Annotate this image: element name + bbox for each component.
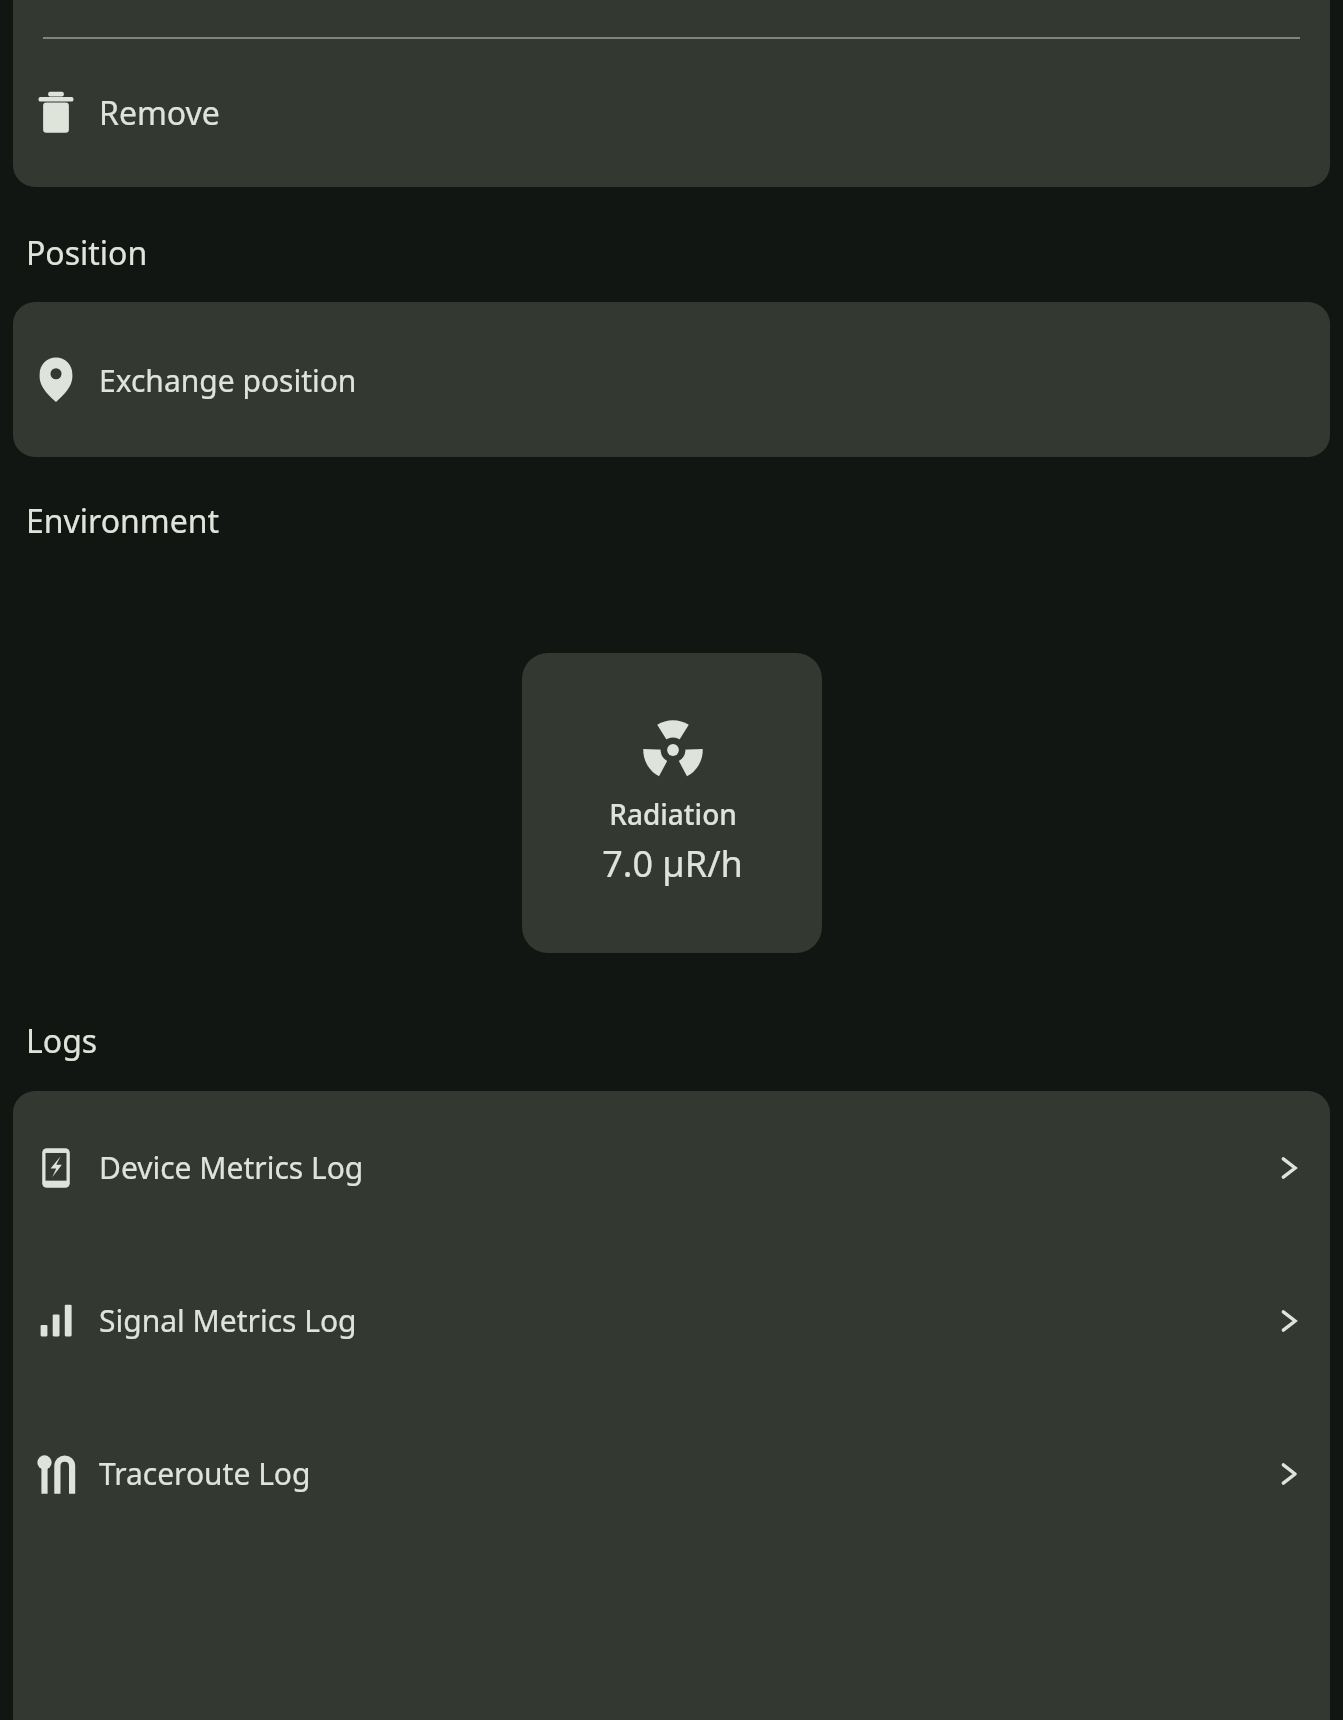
button[interactable]: Remove bbox=[13, 38, 1330, 187]
button[interactable]: Traceroute Log bbox=[13, 1397, 1330, 1550]
staticText: Position bbox=[26, 231, 148, 275]
button[interactable]: Signal Metrics Log bbox=[13, 1244, 1330, 1397]
staticText: Remove bbox=[99, 91, 220, 135]
staticText: Traceroute Log bbox=[99, 1453, 311, 1494]
staticText: Logs bbox=[26, 1019, 98, 1063]
staticText: Radiation bbox=[609, 795, 737, 833]
button[interactable]: Device Metrics Log bbox=[13, 1091, 1330, 1244]
staticText: Signal Metrics Log bbox=[99, 1300, 357, 1341]
staticText: Environment bbox=[26, 499, 220, 543]
staticText: 7.0 µR/h bbox=[602, 839, 743, 888]
button[interactable]: Radiation 7.0 microroentgen per hour bbox=[522, 653, 822, 953]
staticText: Device Metrics Log bbox=[99, 1147, 364, 1188]
button[interactable]: Exchange position bbox=[13, 302, 1330, 457]
staticText: Exchange position bbox=[99, 360, 357, 401]
